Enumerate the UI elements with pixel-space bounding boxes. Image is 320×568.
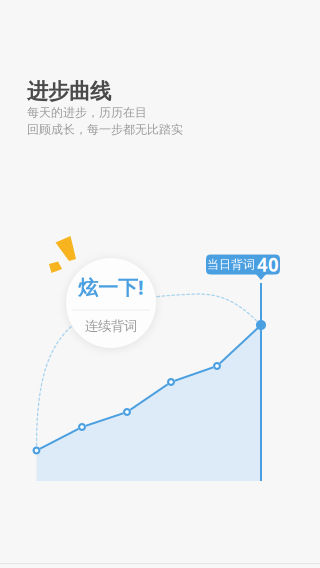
button[interactable]: 当日背词 [206, 254, 280, 274]
button[interactable]: 炫一下! [66, 258, 156, 348]
staticText: 每天的进步，历历在目 [27, 105, 147, 120]
staticText: 进步曲线 [27, 78, 111, 105]
staticText: 炫一下! [78, 274, 144, 300]
staticText: 回顾成长，每一步都无比踏实 [27, 122, 183, 137]
staticText: 连续背词 [85, 318, 137, 334]
staticText: 当日背词 [207, 257, 255, 272]
staticText: 40 [257, 252, 279, 277]
